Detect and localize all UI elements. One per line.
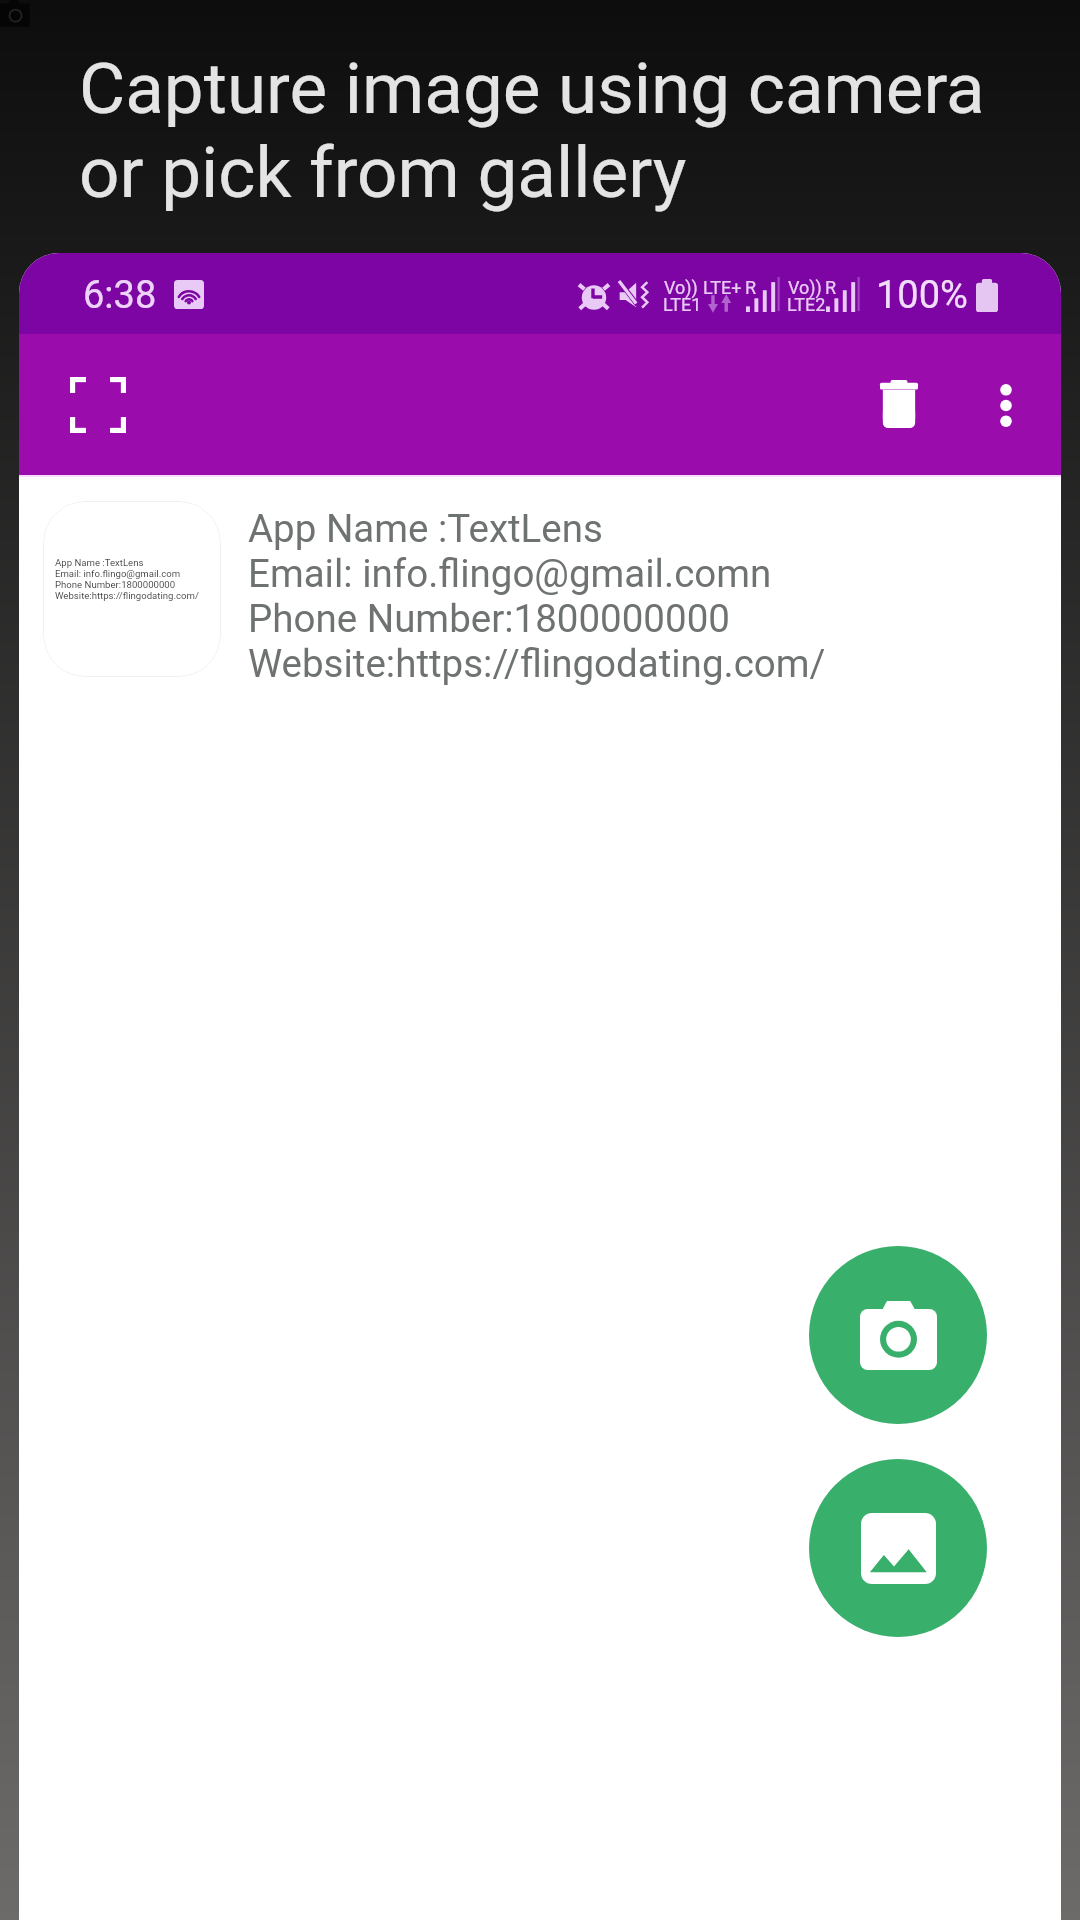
staticText: Phone Number:1800000000 [248,596,730,641]
staticText: LTE1 [663,294,702,315]
staticText: Phone Number:1800000000 [55,579,176,590]
button[interactable]: Crop [38,345,158,465]
staticText: R [825,277,837,298]
staticText: 100% [876,273,968,318]
staticText: LTE2 [787,294,826,315]
staticText: App Name :TextLens [55,557,144,568]
staticText: R [745,277,757,298]
staticText: 6:38 [83,273,157,318]
staticText: App Name :TextLens [248,506,603,551]
staticText: Vo)) [664,277,698,298]
staticText: Website:https://flingodating.com/ [55,590,199,601]
button[interactable]: Delete [839,344,959,464]
button[interactable]: Pick from gallery [809,1459,987,1637]
staticText: Website:https://flingodating.com/ [248,641,826,686]
staticText: Vo)) [788,277,822,298]
staticText: Email: info.flingo@gmail.com [55,568,181,579]
staticText: LTE+ [703,277,742,298]
button[interactable]: Capture photo [809,1246,987,1424]
staticText: Email: info.flingo@gmail.comn [248,551,772,596]
staticText: Capture image using camera or pick from … [79,47,1039,214]
button[interactable]: More options [946,345,1061,465]
